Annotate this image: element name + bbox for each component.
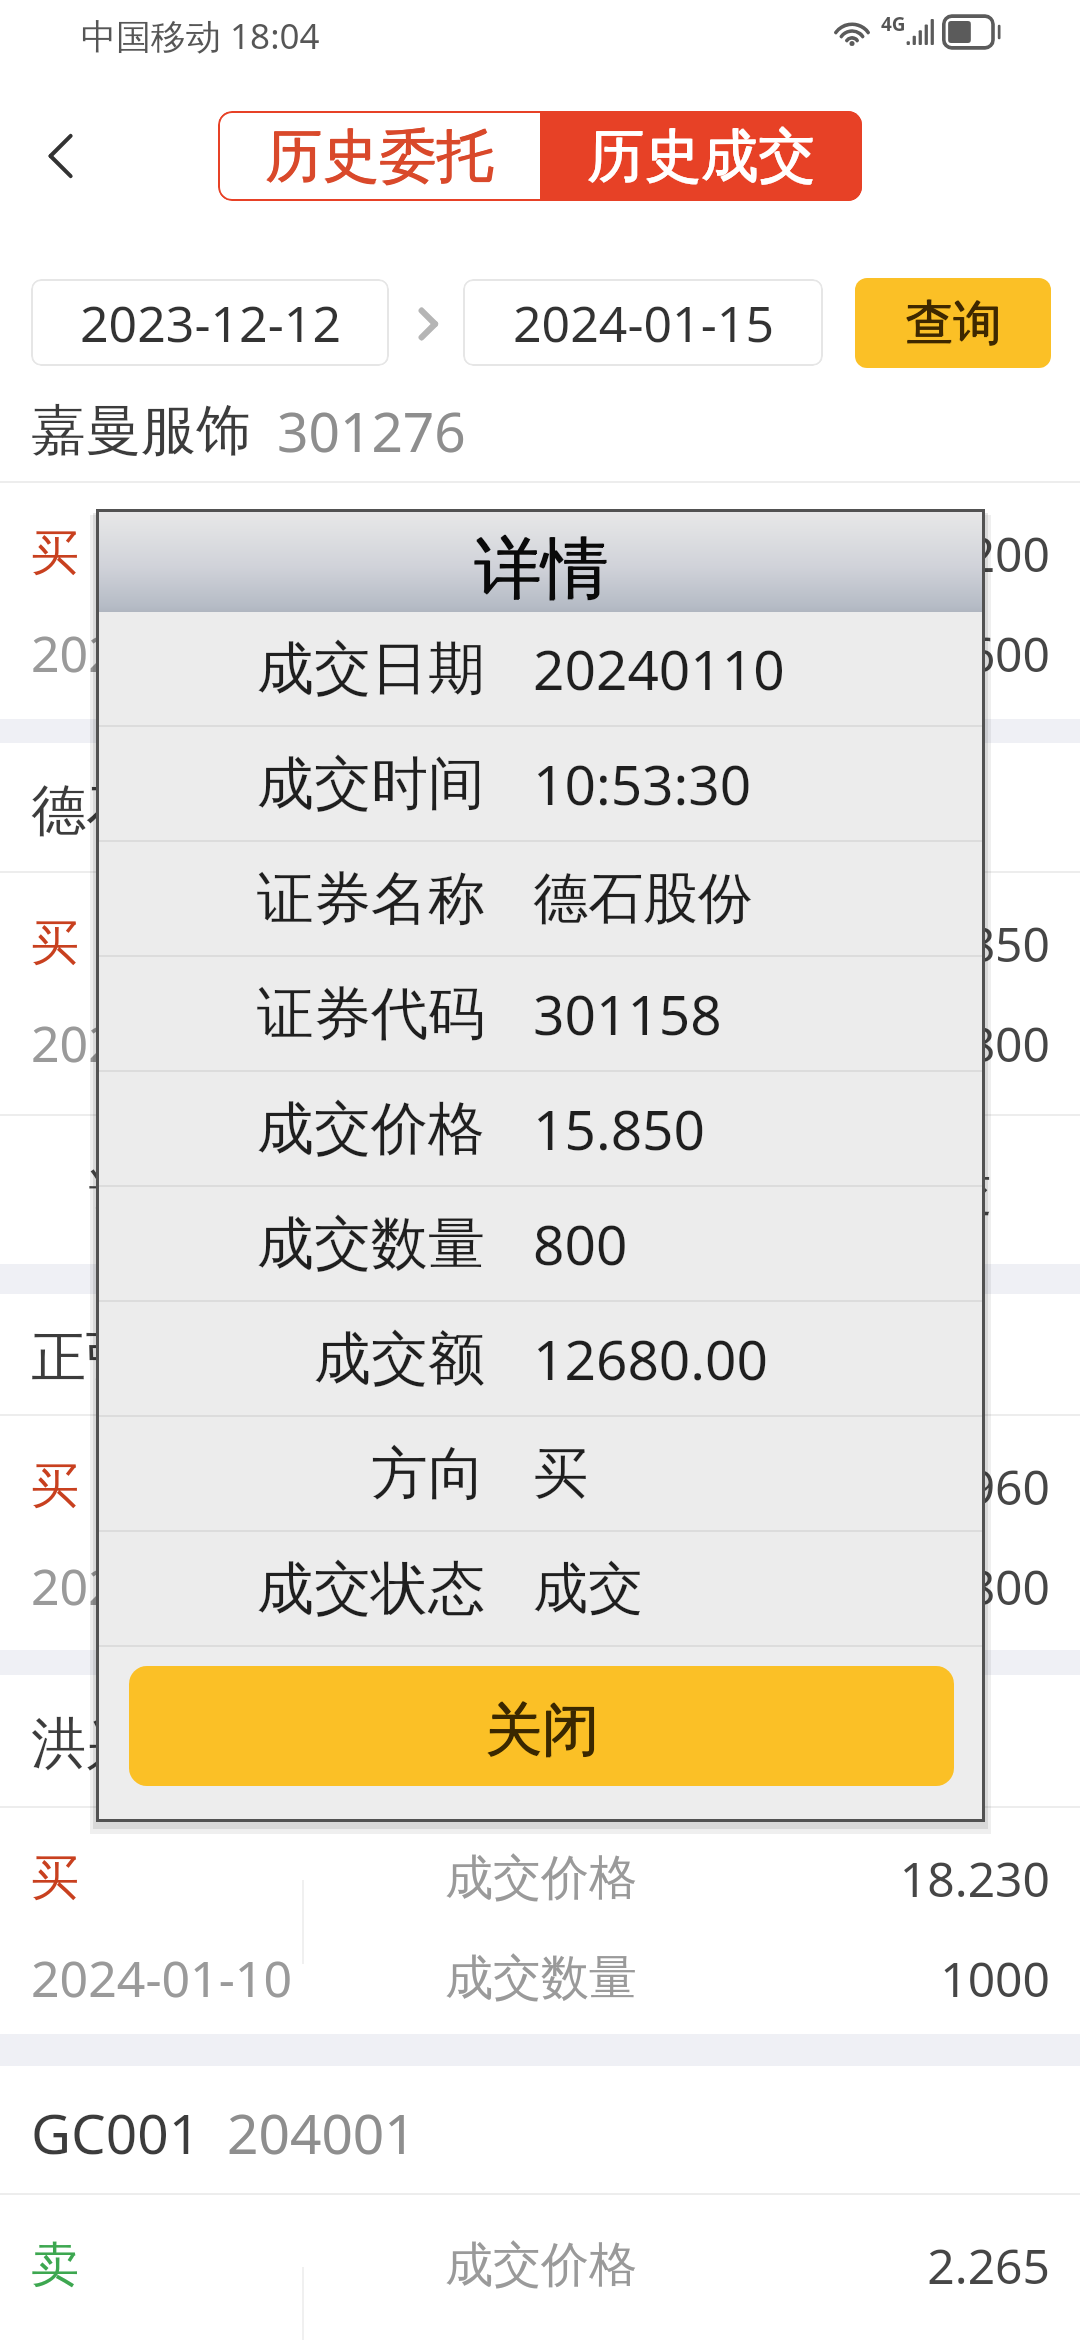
staticText: 12680.00 — [533, 1321, 768, 1396]
button[interactable]: Back — [23, 116, 103, 196]
staticText: 600 — [967, 621, 1050, 686]
staticText: 历史委托 — [266, 120, 494, 192]
staticText: 成交价格 — [445, 1456, 637, 1516]
staticText: 历史成交 — [587, 120, 815, 192]
staticText: 成交价格 — [445, 913, 637, 973]
staticText: 关闭 — [486, 1694, 600, 1766]
staticText: 18.960 — [899, 1454, 1050, 1519]
staticText: 关闭 — [485, 1695, 599, 1767]
button[interactable]: 2024-01-15 — [463, 279, 823, 366]
button[interactable]: GC001 — [0, 2066, 1080, 2195]
staticText: 2024-01-10 — [31, 1552, 292, 1620]
staticText: 成交价格 — [445, 2235, 637, 2295]
staticText: 18.230 — [899, 1846, 1050, 1911]
button[interactable]: 买 — [0, 485, 1080, 711]
button[interactable]: 买 — [0, 1418, 1080, 1644]
staticText: 方向 — [371, 1438, 485, 1510]
staticText: 800 — [533, 1206, 628, 1281]
staticText: 成交 — [896, 1162, 992, 1222]
staticText: 嘉曼服饰 — [31, 396, 251, 465]
button[interactable]: 德石股份 — [0, 743, 1080, 873]
staticText: 204001 — [227, 2095, 416, 2170]
button[interactable]: 历史委托 — [218, 111, 540, 201]
button[interactable]: 查询 — [855, 278, 1051, 368]
staticText: 301158 — [533, 976, 722, 1051]
staticText: 成交时间 — [257, 748, 485, 820]
staticText: 2.265 — [927, 2233, 1050, 2298]
staticText: 查询 — [905, 294, 1001, 354]
staticText: 成交价格 — [257, 1093, 485, 1165]
staticText: 详情 — [474, 527, 608, 611]
other: Date range — [412, 303, 444, 345]
staticText: GC001 — [31, 2095, 201, 2170]
staticText: 10:53:30 — [533, 746, 752, 821]
staticText: 301158 — [277, 773, 466, 848]
staticText: 2023-12-12 — [80, 289, 341, 357]
button[interactable]: 2023-12-12 — [31, 279, 389, 366]
button[interactable]: 洪兴股份 — [0, 1675, 1080, 1808]
staticText: 15.850 — [533, 1091, 706, 1166]
staticText: 买 — [31, 1456, 79, 1516]
staticText: 20240110 — [533, 631, 785, 706]
staticText: 卖 — [31, 2235, 79, 2295]
staticText: 德石股份 — [533, 864, 753, 933]
staticText: 关闭 — [485, 1694, 599, 1766]
staticText: 成交状态 — [257, 1553, 485, 1625]
button[interactable]: 卖 — [0, 2197, 1080, 2340]
staticText: 中国移动 18:04 — [81, 12, 320, 60]
button[interactable]: 证券代码 — [0, 1142, 1080, 1242]
staticText: 证券代码 — [257, 978, 485, 1050]
staticText: 查询 — [905, 293, 1001, 353]
staticText: 买 — [533, 1439, 588, 1508]
staticText: 历史成交 — [587, 121, 815, 193]
button[interactable]: 正弘食品 — [0, 1294, 1080, 1416]
button[interactable]: 关闭 — [129, 1666, 954, 1786]
button[interactable]: 买 — [0, 875, 1080, 1101]
staticText: 证券代码 — [89, 1162, 281, 1222]
staticText: 历史成交 — [588, 120, 816, 192]
staticText: 成交价格 — [445, 523, 637, 583]
staticText: 详情 — [474, 526, 608, 610]
staticText: 29.200 — [899, 521, 1050, 586]
staticText: 成交数量 — [445, 623, 637, 683]
staticText: 成交日期 — [257, 633, 485, 705]
staticText: 德石股份 — [31, 776, 251, 845]
staticText: 洪兴股份 — [31, 1709, 251, 1778]
staticText: 成交数量 — [445, 1948, 637, 2008]
staticText: 成交额 — [314, 1323, 485, 1395]
staticText: 成交数量 — [445, 1013, 637, 1073]
staticText: 查询 — [906, 293, 1002, 353]
staticText: 301276 — [277, 393, 466, 468]
staticText: 成交 — [533, 1554, 643, 1623]
staticText: 15.850 — [899, 911, 1050, 976]
staticText: 详情 — [475, 526, 609, 610]
button[interactable]: 历史成交 — [540, 111, 862, 201]
staticText: 301058 — [277, 1320, 466, 1395]
staticText: 800 — [967, 1011, 1050, 1076]
staticText: 2024-01-10 — [31, 1944, 292, 2012]
staticText: 成交数量 — [445, 1556, 637, 1616]
staticText: 成交数量 — [257, 1208, 485, 1280]
staticText: 1000 — [940, 1946, 1050, 2011]
button[interactable]: 买 — [0, 1810, 1080, 2036]
staticText: 2024-01-10 — [31, 1009, 292, 1077]
staticText: 买 — [31, 523, 79, 583]
staticText: 历史委托 — [265, 121, 493, 193]
staticText: 2024-01-15 — [513, 289, 774, 357]
staticText: 历史委托 — [265, 120, 493, 192]
staticText: 2024-01-12 — [31, 619, 292, 687]
staticText: 成交状态 — [445, 1162, 637, 1222]
staticText: 800 — [967, 1554, 1050, 1619]
button[interactable]: 嘉曼服饰 — [0, 373, 1080, 483]
staticText: 买 — [31, 913, 79, 973]
staticText: 成交价格 — [445, 1848, 637, 1908]
staticText: 4G — [881, 11, 906, 37]
staticText: 买 — [31, 1848, 79, 1908]
staticText: 证券名称 — [257, 863, 485, 935]
staticText: 正弘食品 — [31, 1323, 251, 1392]
